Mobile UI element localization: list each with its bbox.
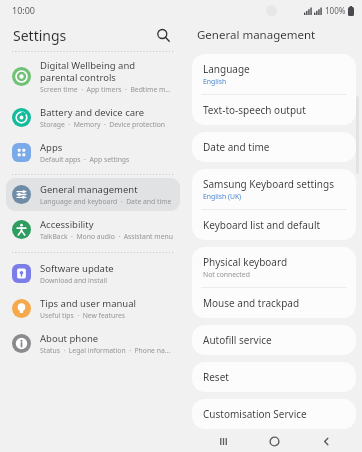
- staticText: Customisation Service: [203, 407, 307, 421]
- staticText: Text-to-speech output: [203, 103, 306, 117]
- button[interactable]: Home: [259, 430, 289, 452]
- staticText: Storage · Memory · Device protection: [40, 120, 166, 129]
- button[interactable]: Autofill service: [192, 325, 356, 355]
- button[interactable]: Tips and user manual: [6, 292, 180, 325]
- button[interactable]: Keyboard list and default: [192, 210, 356, 240]
- staticText: Screen time · App timers · Bedtime mode: [40, 85, 174, 94]
- button[interactable]: General management: [6, 178, 180, 211]
- button[interactable]: Mouse and trackpad: [192, 288, 356, 318]
- button[interactable]: Customisation Service: [192, 399, 356, 429]
- staticText: General management: [40, 183, 138, 196]
- button[interactable]: Language: [192, 54, 356, 94]
- staticText: English: [203, 77, 227, 86]
- staticText: Digital Wellbeing and parental controls: [40, 59, 174, 84]
- button[interactable]: Back: [311, 430, 341, 452]
- staticText: Settings: [13, 26, 67, 45]
- staticText: Useful tips · New features: [40, 311, 126, 320]
- button[interactable]: Digital Wellbeing and parental controls: [6, 54, 180, 99]
- staticText: Language: [203, 62, 250, 76]
- staticText: Apps: [40, 141, 63, 154]
- staticText: English (UK): [203, 192, 242, 201]
- button[interactable]: Apps: [6, 136, 180, 169]
- button[interactable]: Samsung Keyboard settings: [192, 169, 356, 209]
- button[interactable]: Accessibility: [6, 213, 180, 246]
- staticText: Download and install: [40, 276, 108, 285]
- staticText: Accessibility: [40, 218, 94, 231]
- staticText: 100%: [325, 5, 346, 16]
- button[interactable]: Reset: [192, 362, 356, 392]
- button[interactable]: Physical keyboard: [192, 247, 356, 287]
- staticText: Battery and device care: [40, 106, 145, 119]
- staticText: Physical keyboard: [203, 255, 288, 269]
- staticText: Status · Legal information · Phone name: [40, 346, 174, 355]
- staticText: 10:00: [12, 4, 36, 16]
- staticText: Samsung Keyboard settings: [203, 177, 334, 191]
- button[interactable]: Battery and device care: [6, 101, 180, 134]
- staticText: Default apps · App settings: [40, 155, 130, 164]
- staticText: Reset: [203, 370, 229, 384]
- staticText: Mouse and trackpad: [203, 296, 300, 310]
- staticText: Tips and user manual: [40, 297, 137, 310]
- button[interactable]: Recent apps: [208, 430, 238, 452]
- staticText: Not connected: [203, 270, 250, 279]
- button[interactable]: Search: [152, 24, 174, 46]
- staticText: Date and time: [203, 140, 270, 154]
- button[interactable]: About phone: [6, 327, 180, 360]
- button[interactable]: Text-to-speech output: [192, 95, 356, 125]
- staticText: TalkBack · Mono audio · Assistant menu: [40, 232, 173, 241]
- button[interactable]: Date and time: [192, 132, 356, 162]
- staticText: Software update: [40, 262, 114, 275]
- staticText: Language and keyboard · Date and time: [40, 197, 172, 206]
- staticText: Autofill service: [203, 333, 272, 347]
- staticText: About phone: [40, 332, 99, 345]
- staticText: Keyboard list and default: [203, 218, 321, 232]
- staticText: General management: [197, 27, 316, 43]
- button[interactable]: Software update: [6, 257, 180, 290]
